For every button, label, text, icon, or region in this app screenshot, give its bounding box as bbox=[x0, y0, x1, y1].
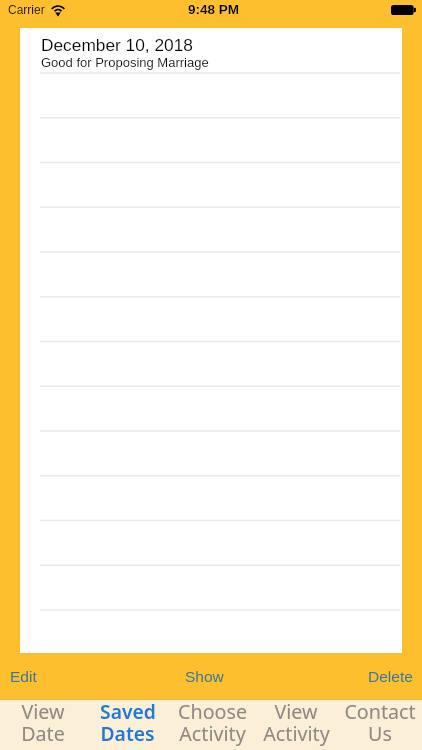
staticText: December 10, 2018 bbox=[41, 35, 193, 54]
staticText: Contact bbox=[344, 698, 416, 725]
staticText: Good for Proposing Marriage bbox=[41, 55, 209, 70]
staticText: Saved bbox=[100, 698, 156, 724]
button[interactable]: Delete bbox=[348, 653, 422, 699]
button[interactable]: Edit bbox=[0, 653, 57, 699]
staticText: Dates bbox=[100, 720, 155, 746]
staticText: Activity bbox=[179, 720, 246, 747]
button[interactable]: View bbox=[254, 699, 338, 750]
staticText: Date bbox=[21, 720, 65, 747]
staticText: Carrier bbox=[8, 3, 45, 16]
staticText: View bbox=[274, 698, 318, 725]
staticText: Us bbox=[368, 720, 392, 747]
staticText: Delete bbox=[368, 668, 413, 685]
staticText: 9:48 PM bbox=[188, 2, 240, 17]
staticText: Activity bbox=[263, 720, 330, 747]
button[interactable]: View bbox=[0, 699, 85, 750]
staticText: Show bbox=[185, 668, 224, 685]
button[interactable]: Show bbox=[177, 653, 232, 699]
button[interactable]: Contact bbox=[338, 699, 422, 750]
staticText: Choose bbox=[178, 698, 247, 725]
button[interactable]: Saved bbox=[85, 699, 170, 750]
staticText: Edit bbox=[10, 668, 37, 685]
button[interactable]: Choose bbox=[170, 699, 254, 750]
staticText: View bbox=[21, 698, 65, 725]
